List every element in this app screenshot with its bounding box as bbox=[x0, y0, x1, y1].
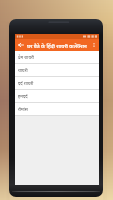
button[interactable]: शायरी bbox=[15, 64, 99, 76]
button[interactable]: दर्द शायरी bbox=[15, 77, 99, 89]
staticText: शायरी bbox=[18, 67, 28, 73]
staticText: रोमांस bbox=[18, 106, 28, 112]
button[interactable]: रोमांस bbox=[15, 103, 99, 115]
button[interactable]: Back bbox=[15, 39, 27, 51]
staticText: दर्द शायरी bbox=[18, 80, 34, 86]
staticText: प्रेम शायरी bbox=[18, 54, 34, 60]
button[interactable]: प्रेम शायरी bbox=[15, 51, 99, 63]
staticText: घर बैठे के हिंदी शायरी कलेक्शन ... bbox=[27, 42, 88, 49]
button[interactable]: हमदर्द bbox=[15, 90, 99, 102]
staticText: हमदर्द bbox=[18, 93, 28, 99]
button[interactable]: More options bbox=[89, 39, 99, 51]
